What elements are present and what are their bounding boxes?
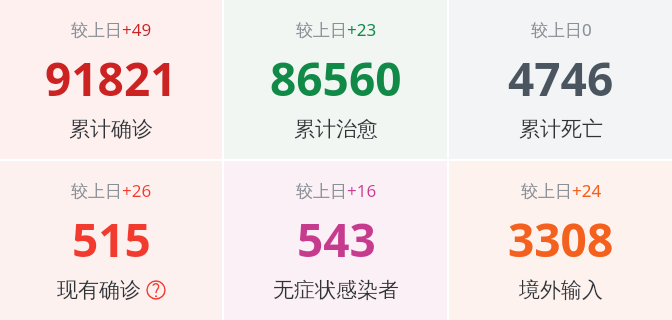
staticText: 较上日0 <box>531 18 592 41</box>
staticText: 较上日+23 <box>296 18 377 41</box>
button[interactable]: 较上日+26 <box>0 161 222 320</box>
staticText: 无症状感染者 <box>273 277 399 303</box>
button[interactable]: 较上日+24 <box>449 161 672 320</box>
staticText: 91821 <box>45 47 177 110</box>
staticText: 3308 <box>508 208 614 271</box>
button[interactable]: 较上日+23 <box>224 0 447 159</box>
staticText: 现有确诊 <box>57 277 141 303</box>
staticText: 较上日+26 <box>71 179 152 202</box>
button[interactable]: 较上日+16 <box>224 161 447 320</box>
button[interactable]: 现有确诊说明 <box>146 280 166 300</box>
staticText: 较上日+24 <box>521 179 602 202</box>
button[interactable]: 较上日+49 <box>0 0 222 159</box>
staticText: 4746 <box>508 47 614 110</box>
staticText: 较上日+16 <box>296 179 377 202</box>
staticText: 累计确诊 <box>69 116 153 142</box>
button[interactable]: 较上日0 <box>449 0 672 159</box>
staticText: 境外输入 <box>519 277 603 303</box>
staticText: 86560 <box>270 47 402 110</box>
staticText: 累计死亡 <box>519 116 603 142</box>
staticText: 较上日+49 <box>71 18 152 41</box>
staticText: 515 <box>72 208 151 271</box>
staticText: 累计治愈 <box>294 116 378 142</box>
staticText: 543 <box>297 208 376 271</box>
